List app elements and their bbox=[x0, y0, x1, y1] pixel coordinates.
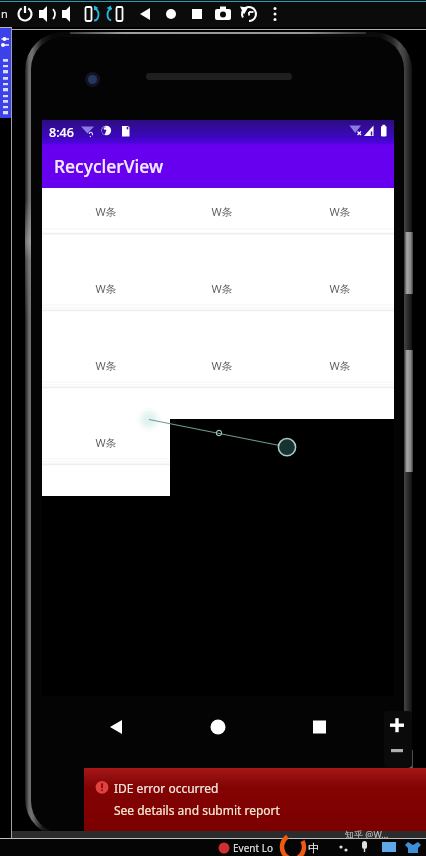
button[interactable]: W条 bbox=[62, 353, 150, 377]
staticText: W条 bbox=[329, 358, 351, 373]
button[interactable]: Zoom in bbox=[384, 711, 412, 739]
staticText: 知乎 @W… bbox=[345, 828, 389, 840]
button[interactable]: W条 bbox=[62, 199, 150, 223]
staticText: W条 bbox=[211, 204, 233, 219]
staticText: See details and submit report bbox=[114, 802, 280, 818]
staticText: W条 bbox=[329, 204, 351, 219]
button[interactable]: Home bbox=[202, 711, 234, 743]
staticText: 中 bbox=[308, 841, 319, 855]
staticText: IDE error occurred bbox=[114, 780, 219, 796]
button[interactable]: IDE error occurred bbox=[84, 768, 426, 831]
button[interactable]: W条 bbox=[296, 276, 384, 300]
staticText: W条 bbox=[95, 281, 117, 296]
staticText: W条 bbox=[95, 435, 117, 450]
staticText: W条 bbox=[95, 204, 117, 219]
button[interactable]: W条 bbox=[178, 353, 266, 377]
staticText: W条 bbox=[329, 281, 351, 296]
staticText: 8:46 bbox=[49, 124, 74, 141]
button[interactable]: W条 bbox=[178, 199, 266, 223]
button[interactable]: W条 bbox=[296, 353, 384, 377]
staticText: Event Lo bbox=[233, 841, 273, 855]
button[interactable]: Running Devices bbox=[0, 27, 11, 118]
button[interactable]: W条 bbox=[62, 430, 150, 454]
staticText: RecyclerView bbox=[54, 154, 164, 178]
staticText: W条 bbox=[211, 281, 233, 296]
button[interactable]: Back bbox=[100, 711, 132, 743]
staticText: W条 bbox=[95, 358, 117, 373]
staticText: W条 bbox=[211, 358, 233, 373]
button[interactable]: W条 bbox=[178, 276, 266, 300]
button[interactable]: W条 bbox=[296, 199, 384, 223]
button[interactable]: W条 bbox=[62, 276, 150, 300]
staticText: n bbox=[1, 6, 8, 21]
button[interactable]: Recent apps bbox=[304, 711, 336, 743]
button[interactable]: Zoom out bbox=[384, 739, 412, 767]
